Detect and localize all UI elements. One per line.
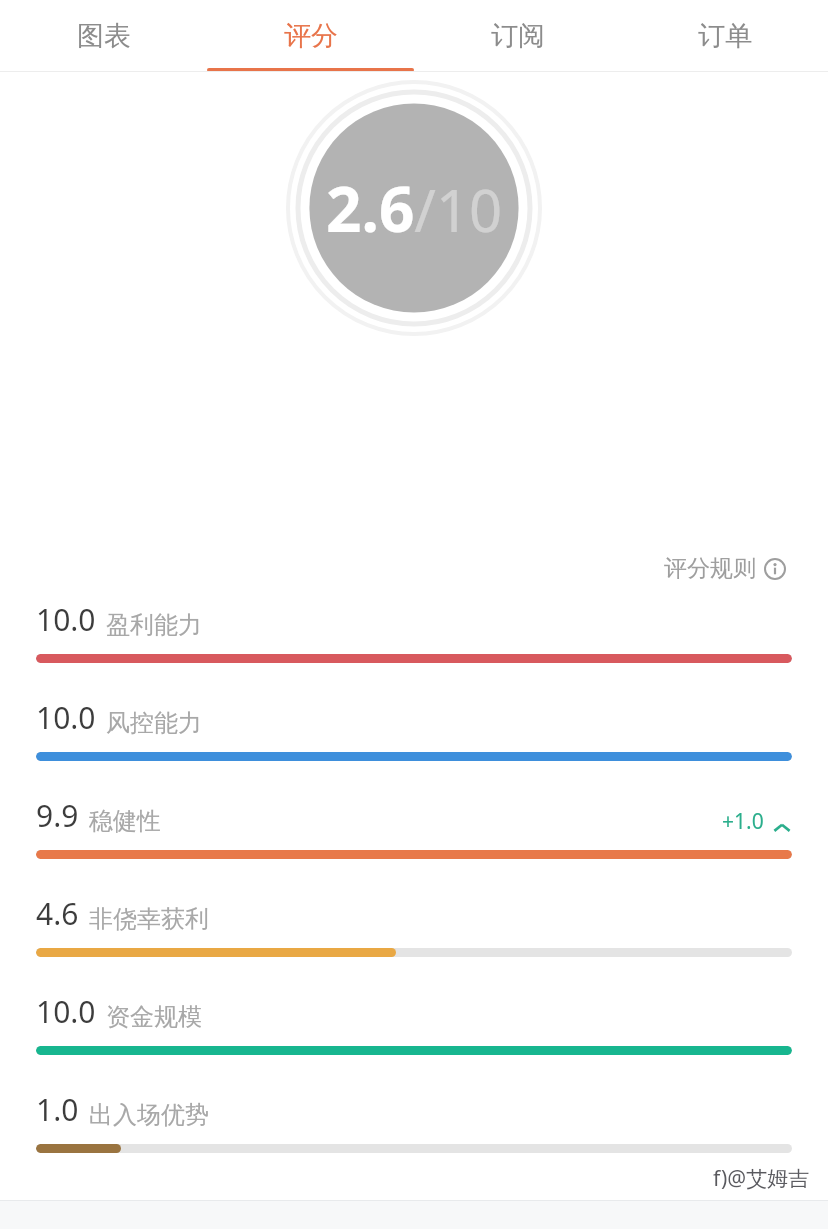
button[interactable]: 订阅 [414, 0, 621, 72]
staticText: 非侥幸获利 [89, 904, 209, 934]
button[interactable]: 评分规则 [658, 548, 792, 589]
staticText: 9.9 [36, 795, 79, 836]
staticText: 风控能力 [106, 708, 202, 738]
button[interactable]: 10.0 [0, 599, 828, 663]
staticText: 10.0 [36, 599, 96, 640]
button[interactable]: 订单 [621, 0, 828, 72]
staticText: 1.0 [36, 1089, 79, 1130]
staticText: 评分 [284, 19, 338, 53]
staticText: +1.0 [722, 807, 764, 836]
staticText: 10.0 [36, 991, 96, 1032]
button[interactable]: 4.6 [0, 893, 828, 957]
button[interactable]: 评分 [207, 0, 414, 72]
staticText: 4.6 [36, 893, 79, 934]
staticText: 稳健性 [89, 806, 161, 836]
button[interactable]: 图表 [0, 0, 207, 72]
button[interactable]: 9.9 [0, 795, 828, 859]
staticText: 订阅 [491, 19, 545, 53]
staticText: 出入场优势 [89, 1100, 209, 1130]
staticText: 图表 [77, 19, 131, 53]
button[interactable]: 10.0 [0, 991, 828, 1055]
button[interactable]: 1.0 [0, 1089, 828, 1153]
staticText: 盈利能力 [106, 610, 202, 640]
staticText: 2.6/10 [326, 166, 503, 250]
staticText: 订单 [698, 19, 752, 53]
button[interactable]: 10.0 [0, 697, 828, 761]
other: 评分规则说明 [764, 558, 786, 580]
staticText: 10.0 [36, 697, 96, 738]
staticText: 评分规则 [664, 554, 756, 583]
staticText: 资金规模 [106, 1002, 202, 1032]
staticText: f)@艾姆吉 [713, 1164, 810, 1193]
